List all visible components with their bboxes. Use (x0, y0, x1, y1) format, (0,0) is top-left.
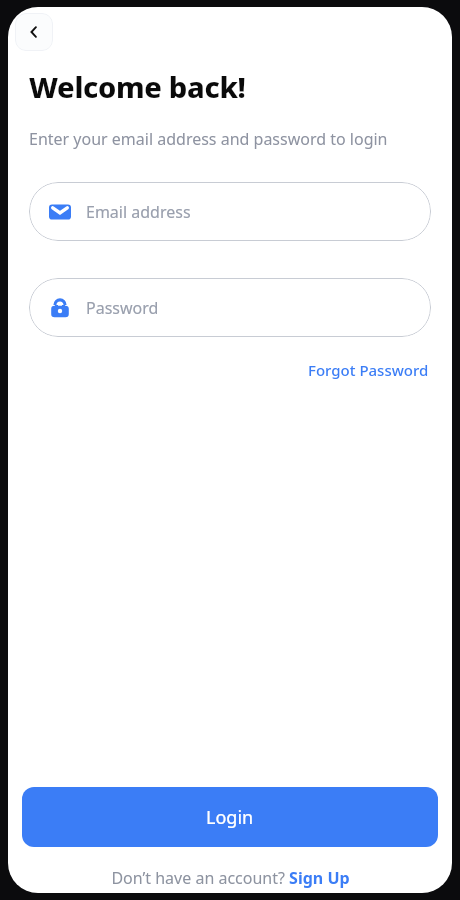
staticText: Email address (86, 201, 191, 223)
button[interactable]: Password (29, 278, 431, 337)
button[interactable]: Don’t have an account? Sign Up (8, 867, 452, 889)
staticText: Forgot Password (308, 360, 429, 380)
button[interactable]: Back (15, 13, 53, 51)
staticText: Password (86, 297, 159, 319)
button[interactable]: Login (22, 787, 438, 847)
button[interactable]: Email address (29, 182, 431, 241)
staticText: Enter your email address and password to… (29, 128, 388, 150)
staticText: Don’t have an account? Sign Up (111, 867, 350, 889)
staticText: Welcome back! (29, 67, 246, 106)
button[interactable]: Forgot Password (306, 357, 431, 383)
staticText: Login (206, 805, 254, 830)
